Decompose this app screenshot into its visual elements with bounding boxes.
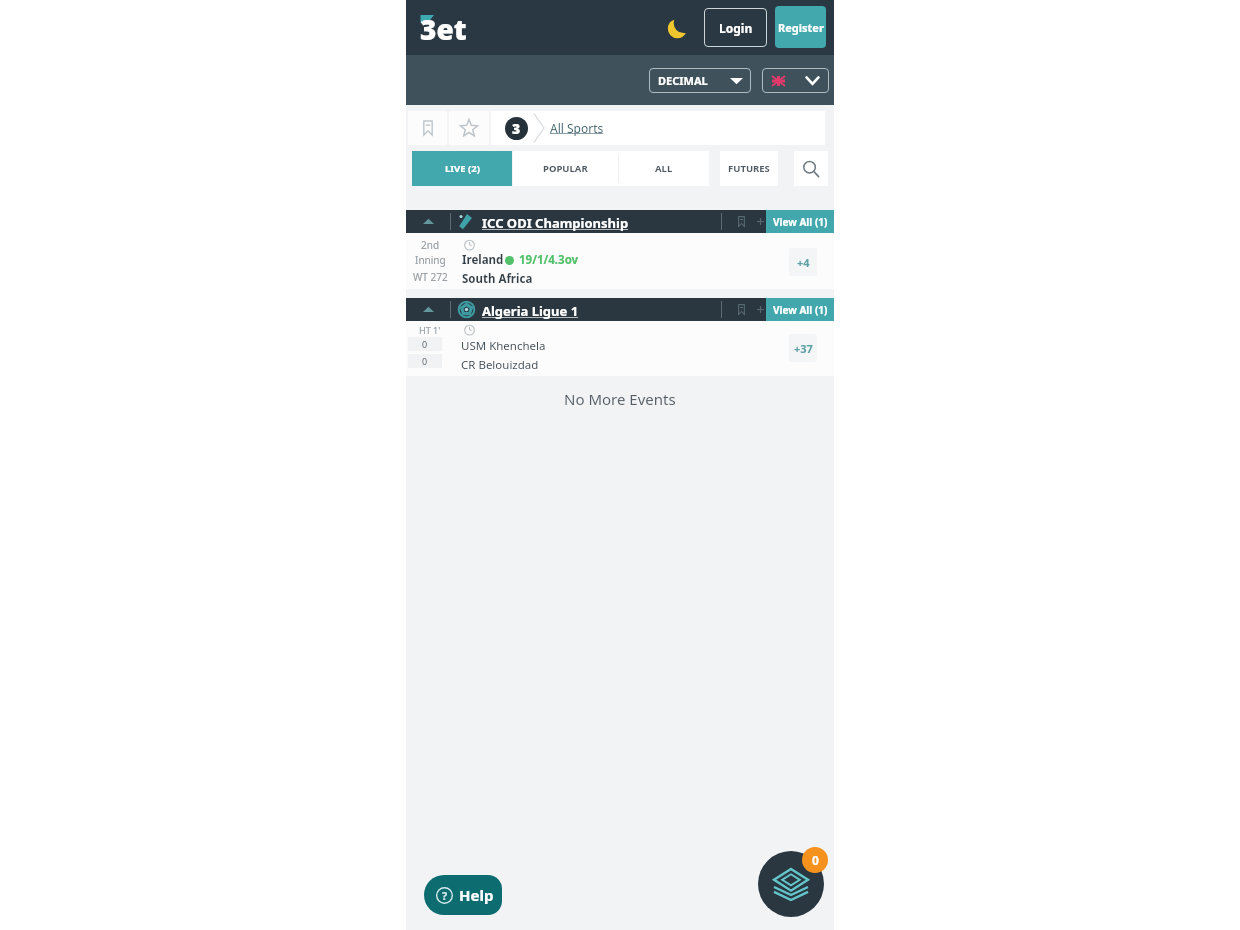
staticText: 2nd	[421, 238, 440, 252]
staticText: Help	[459, 885, 494, 905]
staticText: ALL	[655, 162, 673, 175]
button[interactable]: Dark mode	[666, 17, 688, 39]
button[interactable]: 3	[491, 111, 825, 145]
staticText: DECIMAL	[658, 73, 708, 88]
button[interactable]: Search	[794, 151, 828, 186]
staticText: ?	[442, 888, 448, 903]
staticText: 0	[422, 338, 428, 350]
staticText: View All (1)	[773, 215, 828, 229]
button[interactable]: Register	[775, 6, 826, 48]
staticText: No More Events	[564, 389, 676, 409]
button[interactable]: Bet slip	[758, 851, 824, 917]
staticText: View All (1)	[773, 303, 828, 317]
button[interactable]: Collapse	[406, 298, 450, 321]
button[interactable]: Favourites	[449, 111, 489, 145]
staticText: South Africa	[462, 271, 533, 287]
staticText: Login	[719, 20, 753, 36]
button[interactable]: Login	[704, 8, 767, 47]
staticText: LIVE (2)	[445, 162, 480, 175]
staticText: 3et	[420, 10, 467, 40]
button[interactable]: View All (1)	[766, 210, 834, 233]
staticText: 0	[422, 355, 428, 367]
staticText: +37	[794, 341, 813, 356]
staticText: Register	[778, 20, 824, 35]
staticText: All Sports	[550, 120, 604, 136]
staticText: WT 272	[413, 270, 448, 284]
staticText: ICC ODI Championship	[482, 214, 629, 232]
staticText: Inning	[415, 253, 446, 267]
staticText: 19/1/4.3ov	[519, 252, 579, 268]
staticText: POPULAR	[543, 162, 588, 175]
staticText: 0	[812, 852, 819, 868]
staticText: +4	[797, 255, 810, 270]
button[interactable]: DECIMAL	[649, 68, 751, 93]
button[interactable]: +4	[789, 248, 817, 276]
button[interactable]: POPULAR	[513, 151, 618, 186]
button[interactable]: ALL	[618, 151, 709, 186]
staticText: Ireland	[462, 252, 504, 268]
staticText: 3	[512, 119, 521, 138]
button[interactable]: Add to favourites	[754, 210, 766, 233]
button[interactable]: Add to favourites	[754, 298, 766, 321]
button[interactable]: Collapse	[406, 210, 450, 233]
button[interactable]: Pin league	[728, 298, 754, 321]
button[interactable]: +37	[789, 334, 817, 362]
button[interactable]: Pin league	[728, 210, 754, 233]
button[interactable]: FUTURES	[720, 151, 778, 186]
staticText: USM Khenchela	[461, 338, 546, 354]
button[interactable]: ?	[424, 875, 502, 915]
staticText: Algeria Ligue 1	[482, 302, 579, 320]
staticText: HT 1'	[419, 324, 441, 336]
staticText: FUTURES	[728, 162, 770, 175]
button[interactable]: LIVE (2)	[412, 151, 512, 186]
button[interactable]: Language	[762, 68, 829, 93]
button[interactable]: Bookmarks	[408, 111, 447, 145]
staticText: CR Belouizdad	[461, 357, 539, 373]
button[interactable]: View All (1)	[766, 298, 834, 321]
